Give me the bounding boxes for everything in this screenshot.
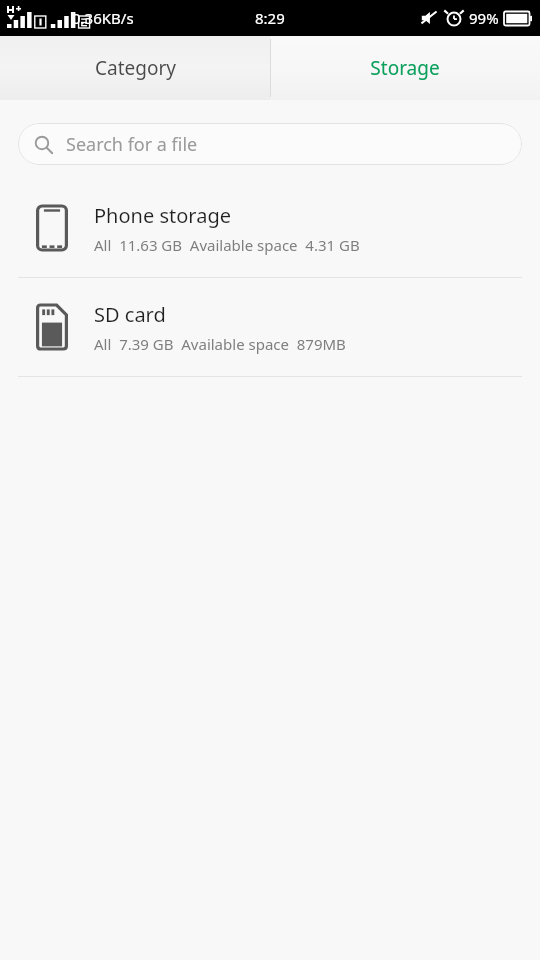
staticText: Storage <box>370 55 440 81</box>
staticText: All 11.63 GB Available space 4.31 GB <box>94 235 360 255</box>
staticText: Phone storage <box>94 202 231 229</box>
button[interactable]: SD card <box>0 278 540 376</box>
button[interactable]: Category <box>0 36 270 100</box>
staticText: 99% <box>469 8 499 28</box>
staticText: 0.36KB/s <box>72 8 134 28</box>
staticText: SD card <box>94 301 166 328</box>
staticText: 8:29 <box>255 8 285 28</box>
button[interactable]: Phone storage <box>0 179 540 277</box>
staticText: All 7.39 GB Available space 879MB <box>94 334 346 354</box>
staticText: Search for a file <box>66 132 198 157</box>
other: Phone storage <box>32 203 72 253</box>
button[interactable]: Storage <box>270 36 540 100</box>
button[interactable]: Search for a file <box>18 123 522 165</box>
other: SD card <box>32 302 72 352</box>
staticText: Category <box>95 55 176 81</box>
